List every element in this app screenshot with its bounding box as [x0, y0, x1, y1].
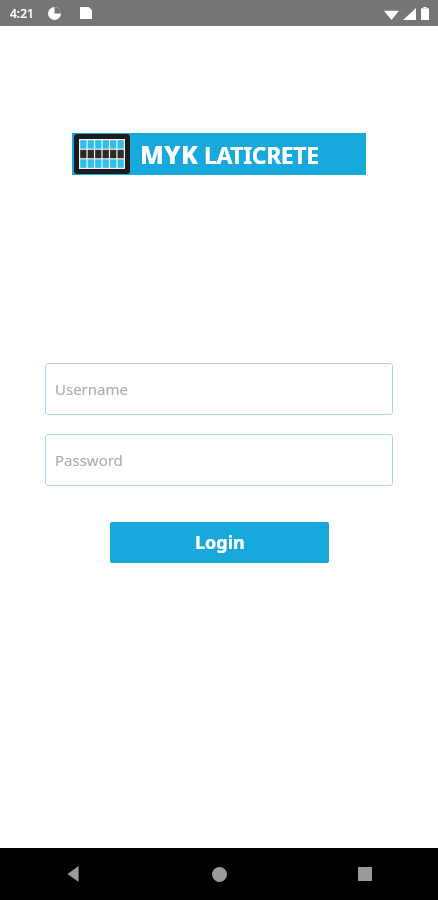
- staticText: Login: [195, 530, 245, 555]
- button[interactable]: Login: [110, 522, 329, 563]
- staticText: Password: [55, 450, 123, 470]
- staticText: MYK: [140, 137, 199, 171]
- button[interactable]: Home: [146, 848, 292, 900]
- button[interactable]: Recent apps: [292, 848, 438, 900]
- staticText: 4:21: [10, 5, 34, 21]
- staticText: Username: [55, 379, 128, 399]
- button[interactable]: Username: [45, 363, 393, 415]
- button[interactable]: Password: [45, 434, 393, 486]
- staticText: LATICRETE: [204, 139, 319, 170]
- button[interactable]: Back: [0, 848, 146, 900]
